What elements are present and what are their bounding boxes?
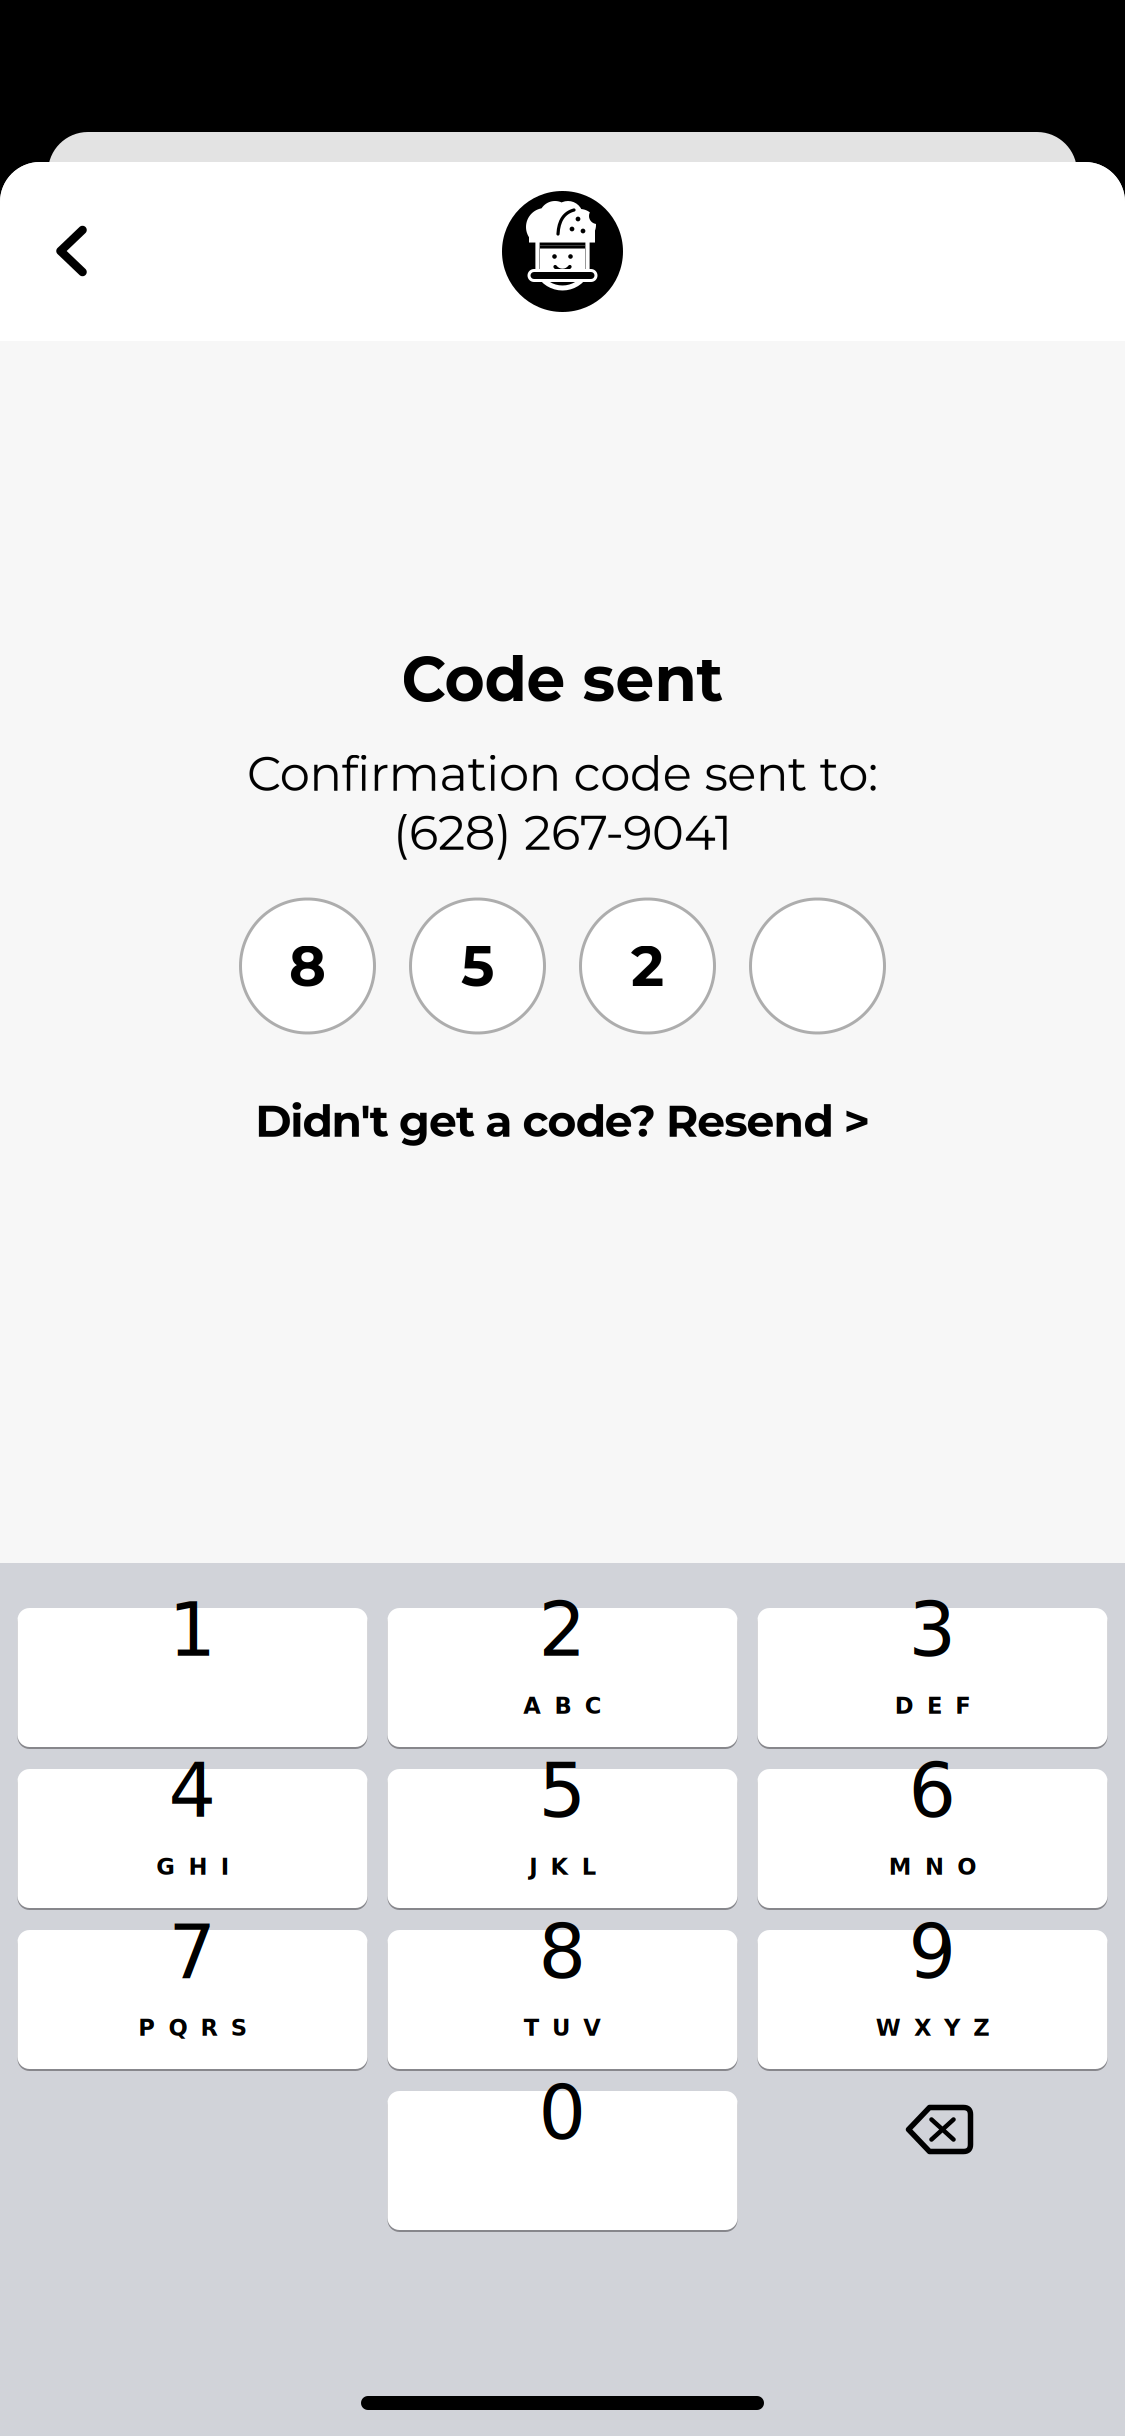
staticText: 0 bbox=[538, 2069, 586, 2156]
staticText: Didn't get a code? Resend > bbox=[255, 1094, 870, 1148]
button[interactable]: 1 bbox=[17, 1608, 367, 1749]
staticText: W X Y Z bbox=[876, 2015, 989, 2041]
staticText: 5 bbox=[538, 1747, 586, 1834]
staticText: 2 bbox=[631, 932, 664, 1000]
button[interactable]: 5 bbox=[387, 1769, 737, 1910]
staticText: 9 bbox=[908, 1908, 956, 1995]
button[interactable]: 8 bbox=[387, 1930, 737, 2071]
staticText: D E F bbox=[895, 1693, 970, 1719]
staticText: T U V bbox=[524, 2015, 601, 2041]
staticText: 8 bbox=[538, 1908, 586, 1995]
staticText: 1 bbox=[168, 1586, 216, 1673]
staticText: Code sent bbox=[401, 642, 723, 716]
staticText: Confirmation code sent to: bbox=[247, 744, 878, 803]
button[interactable]: Didn't get a code? Resend > bbox=[0, 1092, 1125, 1150]
staticText: G H I bbox=[156, 1854, 229, 1880]
button[interactable]: 9 bbox=[757, 1930, 1107, 2071]
staticText: 8 bbox=[289, 932, 326, 1000]
button[interactable]: 3 bbox=[757, 1608, 1107, 1749]
staticText: A B C bbox=[523, 1693, 602, 1719]
button[interactable]: Delete bbox=[757, 2091, 1107, 2232]
button[interactable]: 7 bbox=[17, 1930, 367, 2071]
button[interactable]: 2 bbox=[387, 1608, 737, 1749]
staticText: (628) 267-9041 bbox=[393, 803, 732, 862]
staticText: P Q R S bbox=[138, 2015, 247, 2041]
staticText: J K L bbox=[529, 1854, 596, 1880]
button[interactable]: 6 bbox=[757, 1769, 1107, 1910]
staticText: 2 bbox=[538, 1586, 586, 1673]
staticText: 3 bbox=[908, 1586, 956, 1673]
button[interactable]: 0 bbox=[387, 2091, 737, 2232]
staticText: 7 bbox=[168, 1908, 216, 1995]
staticText: 4 bbox=[168, 1747, 216, 1834]
staticText: 6 bbox=[908, 1747, 956, 1834]
button[interactable]: Back bbox=[16, 195, 128, 307]
button[interactable]: 4 bbox=[17, 1769, 367, 1910]
staticText: 5 bbox=[461, 932, 494, 1000]
staticText: M N O bbox=[889, 1854, 976, 1880]
